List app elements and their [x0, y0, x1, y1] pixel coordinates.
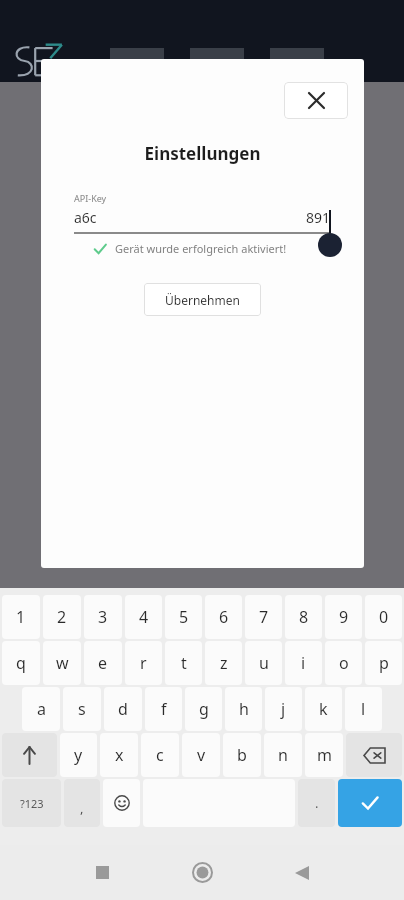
staticText: 8 [299, 606, 309, 628]
button[interactable]: b [223, 733, 261, 777]
button[interactable]: ?123 [2, 779, 61, 827]
button[interactable]: 6 [205, 595, 242, 639]
staticText: Übernehmen [165, 292, 240, 308]
button[interactable]: Shift [2, 733, 57, 777]
button[interactable]: Home [152, 845, 252, 900]
button[interactable]: u [245, 641, 282, 685]
button[interactable]: d [104, 687, 142, 731]
staticText: r [140, 652, 147, 674]
staticText: t [181, 652, 187, 674]
button[interactable]: y [60, 733, 97, 777]
staticText: d [118, 698, 128, 720]
button[interactable]: l [345, 687, 382, 731]
button[interactable]: o [325, 641, 362, 685]
staticText: i [301, 652, 306, 674]
button[interactable]: w [43, 641, 81, 685]
staticText: o [339, 652, 349, 674]
button[interactable]: h [225, 687, 262, 731]
button[interactable]: r [125, 641, 162, 685]
staticText: z [220, 652, 228, 674]
button[interactable]: Back [252, 845, 352, 900]
button[interactable]: z [205, 641, 242, 685]
staticText: h [239, 698, 249, 720]
button[interactable]: Übernehmen [144, 283, 261, 316]
staticText: 7 [259, 606, 269, 628]
button[interactable]: v [182, 733, 220, 777]
button[interactable]: 1 [2, 595, 40, 639]
button[interactable]: 0 [365, 595, 402, 639]
staticText: n [278, 744, 288, 766]
button[interactable]: c [141, 733, 179, 777]
button[interactable]: k [305, 687, 342, 731]
button[interactable]: e [84, 641, 122, 685]
button[interactable]: Backspace [346, 733, 402, 777]
button[interactable]: 3 [84, 595, 122, 639]
button[interactable]: , [64, 779, 100, 827]
staticText: f [161, 698, 167, 720]
staticText: m [317, 744, 332, 766]
button[interactable]: i [285, 641, 322, 685]
staticText: 0 [379, 606, 389, 628]
staticText: . [315, 794, 319, 812]
button[interactable]: Emoji [103, 779, 140, 827]
staticText: 5 [179, 606, 189, 628]
button[interactable]: m [305, 733, 343, 777]
staticText: 2 [57, 606, 67, 628]
staticText: j [281, 698, 286, 720]
staticText: Einstellungen [41, 142, 364, 165]
button[interactable]: t [165, 641, 202, 685]
button[interactable]: Enter [338, 779, 402, 827]
button[interactable]: 4 [125, 595, 162, 639]
staticText: e [98, 652, 108, 674]
staticText: a [37, 698, 46, 720]
staticText: x [115, 744, 124, 766]
staticText: v [197, 744, 206, 766]
staticText: 9 [339, 606, 349, 628]
button[interactable]: p [365, 641, 402, 685]
staticText: c [156, 744, 164, 766]
staticText: w [56, 652, 69, 674]
button[interactable]: 9 [325, 595, 362, 639]
staticText: u [259, 652, 269, 674]
staticText: Gerät wurde erfolgreich aktiviert! [115, 241, 287, 256]
button[interactable]: a [22, 687, 60, 731]
staticText: b [237, 744, 247, 766]
button[interactable]: 5 [165, 595, 202, 639]
button[interactable]: g [185, 687, 222, 731]
staticText: ?123 [20, 796, 44, 811]
staticText: 4 [139, 606, 149, 628]
staticText: 1 [16, 606, 26, 628]
button[interactable]: n [264, 733, 302, 777]
staticText: 3 [98, 606, 108, 628]
staticText: API-Key [74, 192, 107, 204]
button[interactable]: 7 [245, 595, 282, 639]
button[interactable]: Schließen [284, 82, 348, 119]
button[interactable]: . [298, 779, 335, 827]
staticText: g [199, 698, 209, 720]
staticText: 6 [219, 606, 229, 628]
button[interactable]: Recents [52, 845, 152, 900]
staticText: , [80, 799, 84, 817]
button[interactable]: x [100, 733, 138, 777]
staticText: k [319, 698, 328, 720]
button[interactable]: s [63, 687, 101, 731]
staticText: s [78, 698, 86, 720]
staticText: p [379, 652, 389, 674]
staticText: y [74, 744, 83, 766]
staticText: q [16, 652, 26, 674]
staticText: l [361, 698, 366, 720]
button[interactable]: 8 [285, 595, 322, 639]
button[interactable]: f [145, 687, 182, 731]
button[interactable]: q [2, 641, 40, 685]
staticText: a6c [74, 208, 97, 227]
button[interactable]: 2 [43, 595, 81, 639]
staticText: 891 [306, 208, 331, 227]
button[interactable]: j [265, 687, 302, 731]
